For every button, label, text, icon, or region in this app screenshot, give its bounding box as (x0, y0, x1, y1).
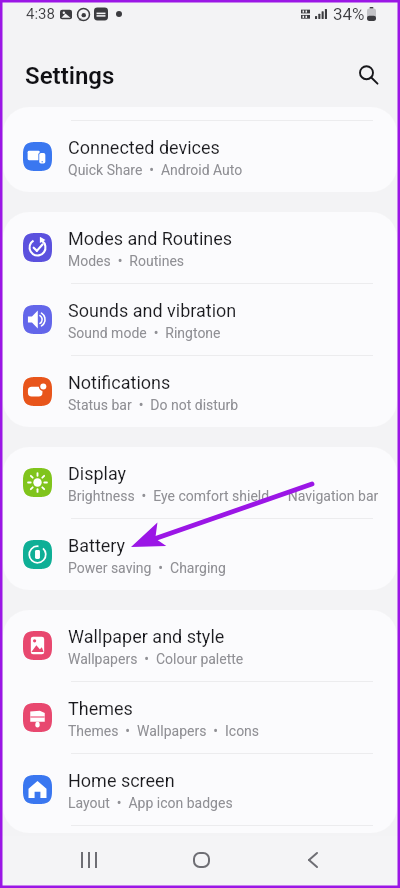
staticText: Connected devices (68, 137, 220, 158)
button[interactable]: Notifications (3, 356, 397, 427)
button[interactable]: Battery (3, 519, 397, 590)
staticText: Settings (25, 62, 115, 90)
staticText: Wallpapers • Colour palette (68, 651, 244, 667)
button[interactable]: Themes (3, 682, 397, 754)
staticText: Home screen (68, 770, 175, 791)
button[interactable]: Recents (33, 834, 145, 886)
staticText: Brightness • Eye comfort shield • Naviga… (68, 488, 379, 504)
button[interactable]: Display (3, 447, 397, 519)
staticText: Wallpaper and style (68, 626, 225, 647)
staticText: Modes • Routines (68, 253, 185, 269)
button[interactable]: Connected devices (3, 121, 397, 192)
staticText: Quick Share • Android Auto (68, 162, 243, 178)
staticText: Status bar • Do not disturb (68, 397, 239, 413)
button[interactable]: Back (257, 834, 369, 886)
staticText: Power saving • Charging (68, 560, 226, 576)
button[interactable]: Home (145, 834, 257, 886)
button[interactable]: Modes and Routines (3, 212, 397, 284)
button[interactable]: Search (352, 58, 386, 92)
staticText: Sounds and vibration (68, 300, 237, 321)
button[interactable]: Wallpaper and style (3, 610, 397, 682)
staticText: 34% (333, 4, 365, 24)
staticText: Modes and Routines (68, 228, 233, 249)
staticText: Sound mode • Ringtone (68, 325, 221, 341)
staticText: Themes • Wallpapers • Icons (68, 723, 260, 739)
button[interactable]: Sounds and vibration (3, 284, 397, 356)
staticText: Themes (68, 698, 133, 719)
staticText: Layout • App icon badges (68, 795, 233, 811)
staticText: Battery (68, 535, 126, 556)
staticText: 4:38 (26, 5, 55, 23)
button[interactable]: Home screen (3, 754, 397, 826)
staticText: Notifications (68, 372, 171, 393)
staticText: Display (68, 463, 127, 484)
